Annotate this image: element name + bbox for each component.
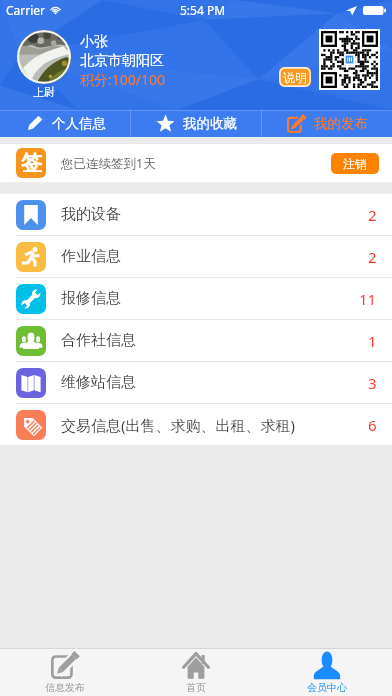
button[interactable]: 首页: [130, 648, 261, 696]
staticText: 5:54 PM: [180, 2, 226, 18]
staticText: 2: [368, 247, 377, 267]
staticText: 1: [368, 331, 377, 351]
button[interactable]: 我的收藏: [131, 110, 261, 137]
staticText: 积分:100/100: [80, 70, 166, 89]
button[interactable]: 维修站信息: [0, 362, 392, 403]
button[interactable]: 个人信息: [0, 110, 130, 137]
button[interactable]: 信息发布: [0, 648, 130, 696]
button[interactable]: 我的发布: [262, 110, 392, 137]
staticText: 小张: [80, 33, 108, 51]
staticText: 北京市朝阳区: [80, 52, 164, 70]
button[interactable]: 说明: [279, 67, 311, 87]
staticText: 3: [368, 373, 377, 393]
button[interactable]: 注销: [331, 153, 379, 174]
button[interactable]: 会员中心: [261, 648, 392, 696]
staticText: 信息发布: [45, 681, 85, 694]
staticText: 签: [21, 150, 42, 176]
staticText: 交易信息(出售、求购、出租、求租): [61, 415, 296, 435]
staticText: 会员中心: [307, 681, 347, 694]
staticText: 2: [368, 205, 377, 225]
button[interactable]: 我的设备: [0, 194, 392, 235]
staticText: 首页: [186, 681, 206, 694]
staticText: 6: [368, 415, 377, 435]
staticText: 11: [359, 289, 377, 309]
button[interactable]: 交易信息(出售、求购、出租、求租): [0, 404, 392, 445]
staticText: 您已连续签到1天: [61, 155, 156, 172]
staticText: 作业信息: [61, 247, 121, 266]
staticText: 我的发布: [314, 115, 368, 132]
staticText: 上尉: [33, 85, 55, 99]
button[interactable]: 报修信息: [0, 278, 392, 319]
staticText: 报修信息: [61, 289, 121, 308]
staticText: 说明: [283, 70, 307, 85]
staticText: 维修站信息: [61, 373, 136, 392]
button[interactable]: 签: [0, 144, 392, 182]
button[interactable]: QR code: [319, 29, 380, 90]
staticText: Carrier: [6, 2, 46, 18]
button[interactable]: 作业信息: [0, 236, 392, 277]
staticText: 我的设备: [61, 205, 121, 224]
button[interactable]: 合作社信息: [0, 320, 392, 361]
staticText: 合作社信息: [61, 331, 136, 350]
staticText: 注销: [343, 156, 367, 171]
staticText: 我的收藏: [183, 115, 237, 132]
staticText: 个人信息: [52, 115, 106, 132]
